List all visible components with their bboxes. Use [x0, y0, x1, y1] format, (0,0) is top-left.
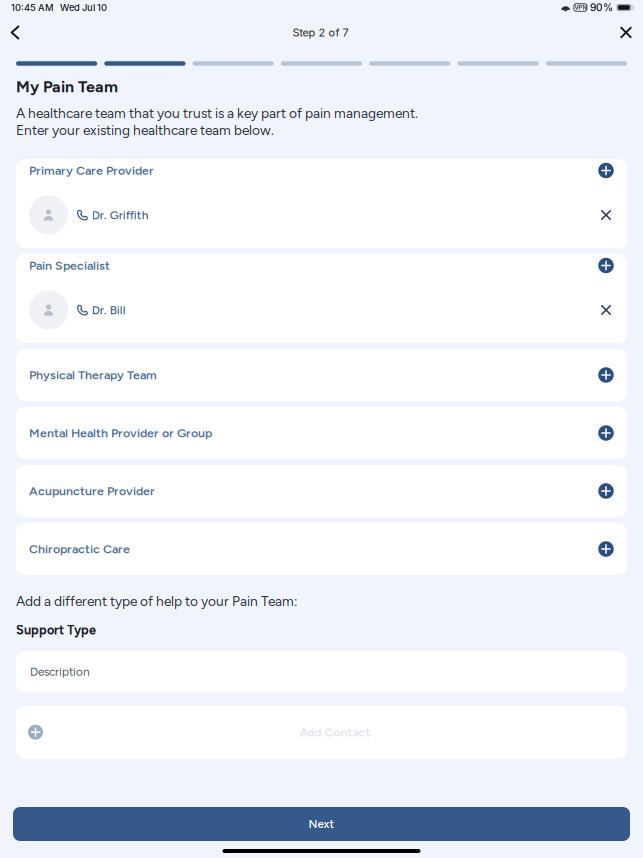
staticText: VPN [574, 4, 586, 11]
button[interactable]: Close [611, 17, 641, 47]
button[interactable]: Add Pain Specialist [591, 250, 621, 280]
button[interactable]: Add Primary Care Provider [591, 155, 621, 185]
staticText: 90% [590, 1, 613, 14]
staticText: 10:45 AM [11, 2, 54, 13]
staticText: My Pain Team [16, 77, 118, 96]
staticText: Step 2 of 7 [292, 26, 348, 39]
staticText: Dr. Bill [92, 303, 126, 317]
staticText: Acupuncture Provider [29, 484, 155, 498]
staticText: A healthcare team that you trust is a ke… [16, 105, 418, 121]
button[interactable]: Mental Health Provider or Group [16, 407, 627, 459]
staticText: Dr. Griffith [92, 208, 149, 222]
staticText: Add a different type of help to your Pai… [16, 593, 297, 609]
button[interactable]: Chiropractic Care [16, 523, 627, 575]
staticText: Enter your existing healthcare team belo… [16, 122, 274, 138]
button[interactable]: Physical Therapy Team [16, 349, 627, 401]
button[interactable]: Next [13, 807, 630, 841]
staticText: Description [30, 665, 90, 679]
staticText: Mental Health Provider or Group [29, 426, 212, 440]
button[interactable]: Acupuncture Provider [16, 465, 627, 517]
staticText: Primary Care Provider [29, 163, 154, 178]
staticText: Physical Therapy Team [29, 368, 157, 382]
staticText: Wed Jul 10 [60, 2, 107, 13]
button[interactable]: Back [0, 17, 30, 47]
button[interactable]: Remove Dr. Griffith [591, 200, 621, 230]
staticText: Support Type [16, 622, 96, 638]
button[interactable]: Add Contact [16, 706, 627, 759]
staticText: Chiropractic Care [29, 542, 130, 556]
staticText: Pain Specialist [29, 258, 110, 273]
staticText: Add Contact [299, 725, 370, 739]
staticText: Next [308, 817, 334, 831]
button[interactable]: Remove Dr. Bill [591, 295, 621, 325]
